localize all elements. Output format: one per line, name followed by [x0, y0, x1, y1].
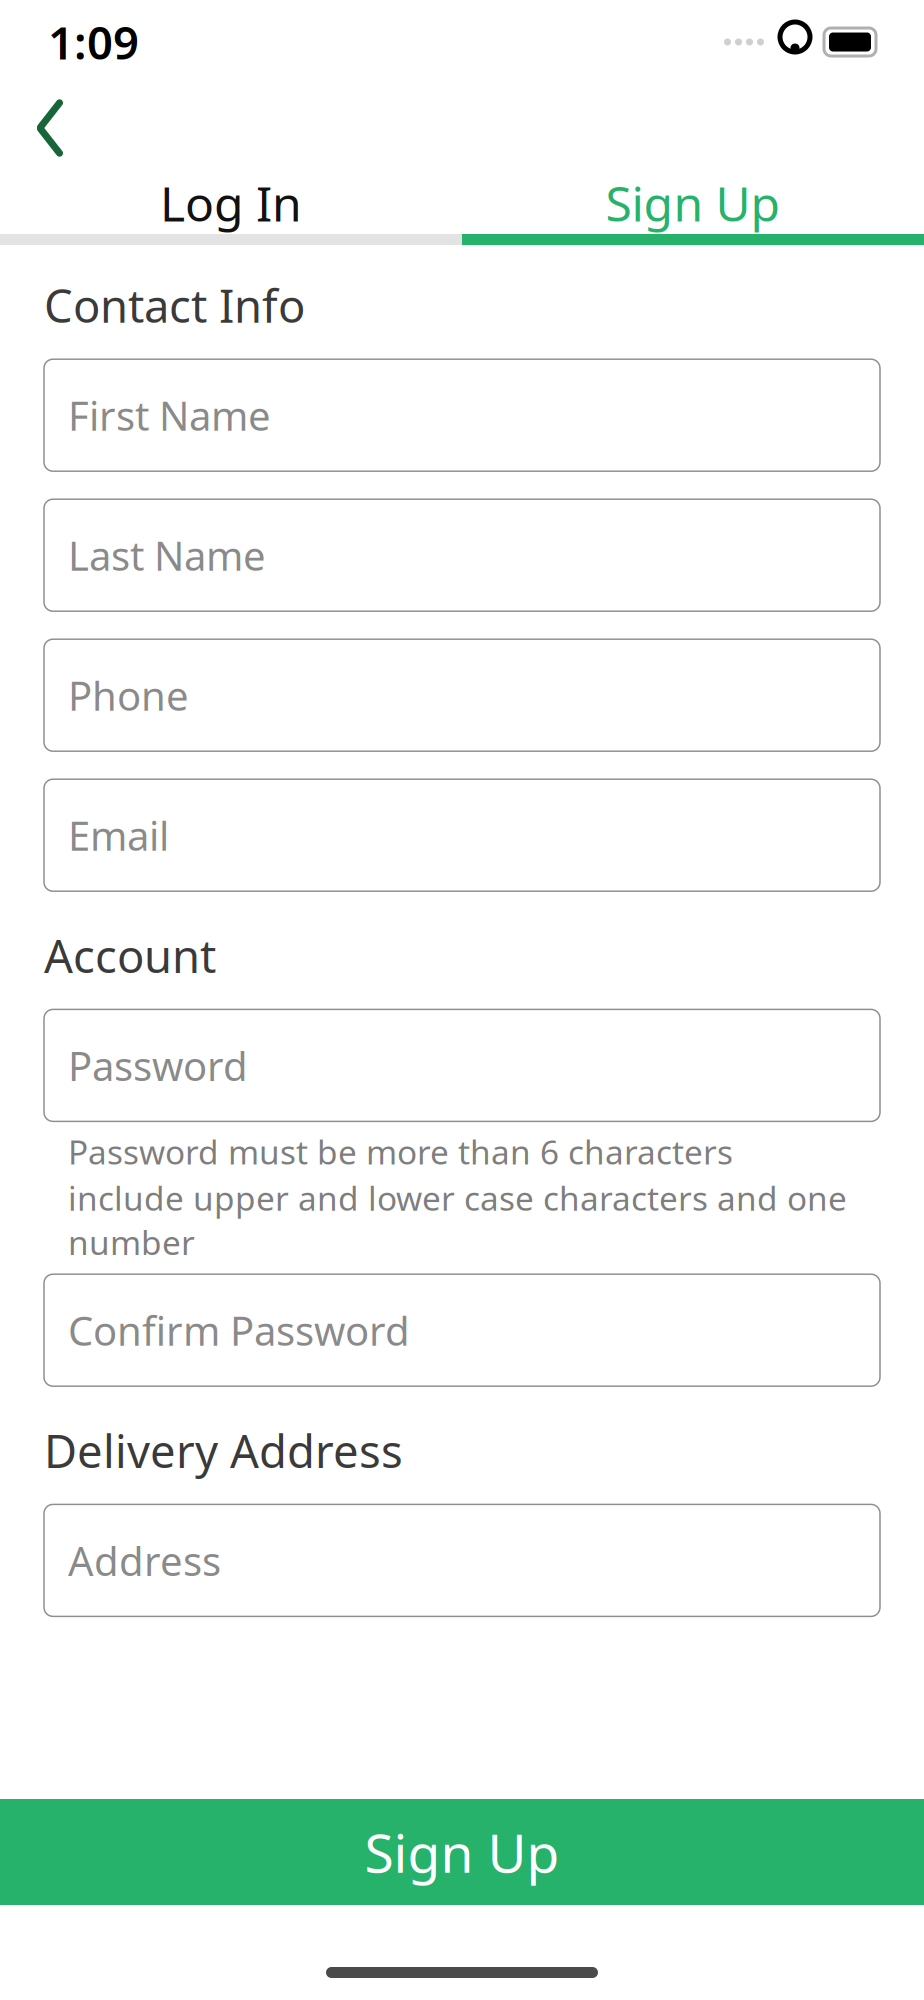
staticText: Sign Up [364, 1817, 559, 1887]
staticText: include upper and lower case characters … [68, 1176, 847, 1264]
staticText: Confirm Password [68, 1304, 410, 1357]
staticText: First Name [68, 389, 271, 442]
staticText: Last Name [68, 529, 266, 582]
staticText: Log In [160, 171, 302, 235]
staticText: Account [44, 925, 216, 985]
staticText: Password must be more than 6 characters [68, 1129, 733, 1174]
staticText: Contact Info [44, 275, 305, 335]
staticText: Address [68, 1534, 221, 1587]
staticText: Password [68, 1039, 248, 1092]
staticText: Email [68, 809, 169, 862]
button[interactable]: Log In [0, 172, 462, 234]
button[interactable]: Back [10, 84, 90, 172]
staticText: Delivery Address [44, 1420, 403, 1480]
button[interactable]: Sign Up [462, 172, 924, 234]
staticText: Phone [68, 669, 189, 722]
staticText: 1:09 [48, 12, 139, 72]
staticText: Sign Up [605, 171, 780, 235]
button[interactable]: Sign Up [0, 1799, 924, 1905]
